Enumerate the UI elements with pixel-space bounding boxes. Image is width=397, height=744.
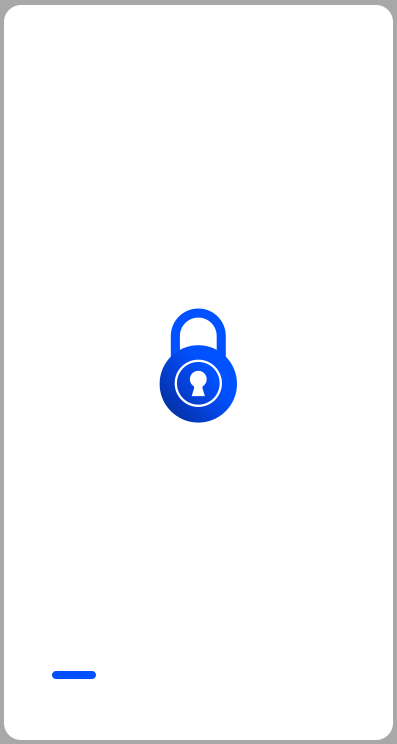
- button[interactable]: Unlock: [159, 308, 237, 424]
- button[interactable]: Continue: [52, 671, 96, 679]
